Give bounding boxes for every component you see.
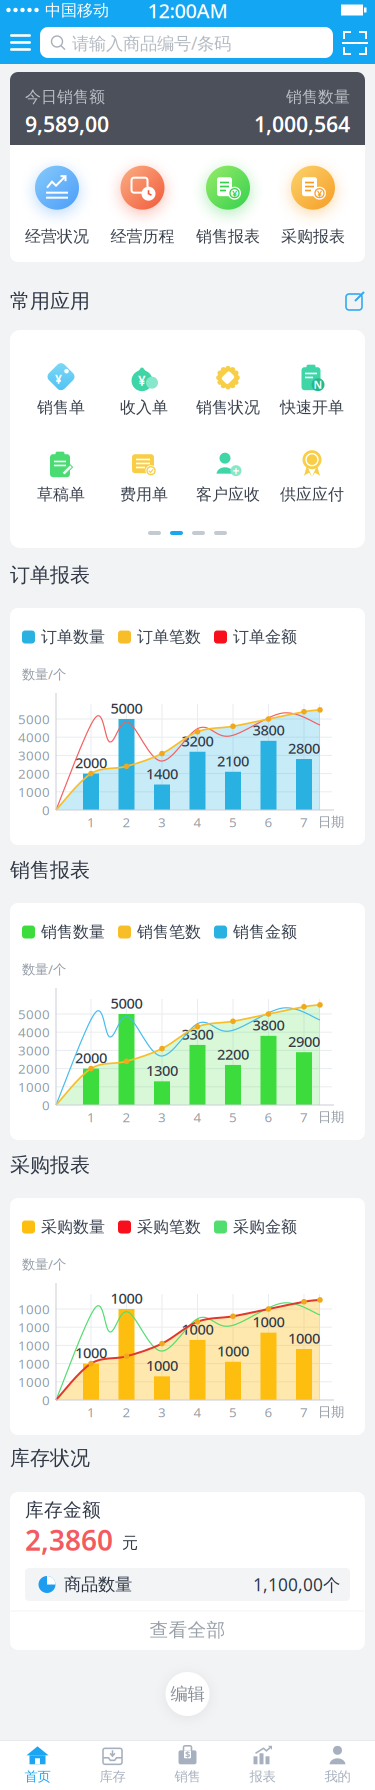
staticText: N	[313, 378, 322, 392]
button[interactable]: 报表	[225, 1741, 300, 1789]
staticText: 2900	[288, 1031, 320, 1051]
button[interactable]: 库存	[75, 1741, 150, 1789]
staticText: 2800	[288, 738, 320, 758]
button[interactable]: 扫码	[342, 30, 368, 56]
staticText: 2000	[75, 753, 107, 772]
button[interactable]: 费用单	[104, 444, 184, 506]
button[interactable]: 经营状况	[15, 164, 99, 248]
staticText: 6	[264, 813, 272, 831]
staticText: 3800	[252, 720, 284, 740]
staticText: 订单笔数	[137, 627, 201, 647]
staticText: 报表	[249, 1768, 275, 1785]
staticText: 销售报表	[10, 858, 90, 882]
staticText: +	[232, 463, 239, 479]
button[interactable]: ¥	[271, 164, 355, 248]
button[interactable]: 编辑	[165, 1672, 209, 1716]
staticText: 1000	[18, 1355, 50, 1372]
button[interactable]: 销售状况	[188, 357, 268, 419]
staticText: 3000	[18, 1041, 50, 1059]
staticText: 3200	[181, 731, 213, 750]
button[interactable]: 供应应付	[272, 444, 352, 506]
staticText: 订单数量	[41, 627, 105, 647]
staticText: 2200	[217, 1044, 249, 1064]
staticText: 6	[264, 1108, 272, 1126]
staticText: 3	[158, 1108, 166, 1126]
staticText: ¥	[317, 187, 322, 199]
staticText: 销售数量	[41, 922, 105, 942]
staticText: 常用应用	[10, 289, 90, 313]
staticText: 5	[229, 1108, 237, 1126]
staticText: 4000	[18, 1023, 50, 1041]
staticText: ¥	[138, 372, 146, 389]
button[interactable]: $	[150, 1741, 225, 1789]
staticText: 2,3860	[25, 1521, 113, 1559]
staticText: 采购笔数	[137, 1217, 201, 1237]
staticText: 1000	[110, 1288, 142, 1308]
button[interactable]: +	[188, 444, 268, 506]
staticText: 4	[193, 813, 201, 831]
button[interactable]: 草稿单	[21, 444, 101, 506]
button[interactable]: ¥	[186, 164, 270, 248]
button[interactable]: 编辑常用应用	[345, 291, 365, 311]
staticText: 查看全部	[149, 1618, 225, 1641]
staticText: 数量/个	[22, 960, 66, 978]
staticText: 1000	[252, 1312, 284, 1331]
button[interactable]: ¥	[104, 357, 184, 419]
staticText: 3000	[18, 746, 50, 764]
staticText: 采购数量	[41, 1217, 105, 1237]
staticText: 首页	[24, 1768, 50, 1785]
staticText: 日期	[318, 1404, 344, 1420]
staticText: 采购报表	[10, 1153, 90, 1177]
button[interactable]: 首页	[0, 1741, 75, 1789]
button[interactable]: 经营历程	[100, 164, 184, 248]
button[interactable]: 搜索	[40, 27, 333, 58]
staticText: 9,589,00	[25, 110, 109, 138]
staticText: 7	[300, 1108, 308, 1126]
staticText: 收入单	[120, 398, 168, 417]
staticText: 1000	[181, 1319, 213, 1339]
staticText: 5000	[110, 993, 142, 1013]
staticText: 7	[300, 1403, 308, 1421]
staticText: 销售笔数	[137, 922, 201, 942]
staticText: 3800	[252, 1015, 284, 1035]
staticText: 2100	[217, 751, 249, 770]
staticText: 销售数量	[286, 87, 350, 107]
staticText: 1000	[18, 1078, 50, 1096]
staticText: 草稿单	[37, 485, 85, 504]
staticText: 2000	[18, 765, 50, 782]
staticText: 4	[193, 1403, 201, 1421]
staticText: 12:00AM	[147, 0, 227, 24]
staticText: 3	[158, 1403, 166, 1421]
staticText: 5000	[18, 710, 50, 728]
button[interactable]: 我的	[300, 1741, 375, 1789]
staticText: 2000	[75, 1048, 107, 1067]
button[interactable]: N	[272, 357, 352, 419]
staticText: 费用单	[120, 485, 168, 504]
staticText: 经营历程	[110, 227, 174, 246]
staticText: 今日销售额	[25, 87, 105, 107]
staticText: 2	[122, 1403, 130, 1421]
button[interactable]: 查看全部	[10, 1611, 365, 1649]
staticText: 2	[122, 813, 130, 831]
staticText: 中国移动	[45, 1, 109, 20]
staticText: 订单金额	[233, 627, 297, 647]
staticText: 我的	[324, 1768, 350, 1785]
button[interactable]: 菜单	[8, 29, 33, 55]
staticText: 请输入商品编号/条码	[72, 31, 231, 54]
staticText: 6	[264, 1403, 272, 1421]
staticText: 销售单	[37, 398, 85, 417]
button[interactable]: ¥	[21, 357, 101, 419]
staticText: 0	[42, 1096, 50, 1114]
staticText: 4	[193, 1108, 201, 1126]
staticText: 1000	[18, 1336, 50, 1354]
staticText: 5	[229, 1403, 237, 1421]
staticText: 客户应收	[196, 485, 260, 504]
staticText: ¥	[232, 187, 237, 199]
staticText: 数量/个	[22, 1255, 66, 1273]
staticText: 库存状况	[10, 1446, 90, 1470]
staticText: 采购金额	[233, 1217, 297, 1237]
staticText: 1000	[18, 1373, 50, 1391]
staticText: 0	[42, 801, 50, 819]
staticText: 1,100,00个	[253, 1573, 340, 1596]
staticText: 2000	[18, 1060, 50, 1077]
